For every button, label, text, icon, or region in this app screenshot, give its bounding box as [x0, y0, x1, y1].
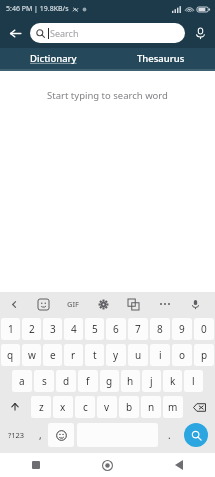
- button[interactable]: Back: [143, 453, 215, 477]
- staticText: n: [148, 400, 155, 414]
- staticText: r: [71, 348, 76, 362]
- button[interactable]: Emoji: [48, 423, 74, 447]
- button[interactable]: i: [150, 344, 170, 366]
- button[interactable]: 7: [128, 318, 148, 340]
- button[interactable]: GIF: [58, 292, 88, 316]
- staticText: y: [113, 348, 119, 362]
- button[interactable]: 5: [85, 318, 104, 340]
- button[interactable]: ?123: [0, 420, 32, 450]
- staticText: Dictionary: [30, 52, 77, 65]
- staticText: 5: [92, 322, 98, 336]
- button[interactable]: g: [100, 370, 119, 392]
- staticText: l: [192, 374, 195, 388]
- button[interactable]: Translate: [118, 292, 149, 316]
- staticText: f: [86, 374, 90, 388]
- button[interactable]: k: [163, 370, 182, 392]
- staticText: 2: [29, 322, 35, 336]
- button[interactable]: Home: [71, 453, 143, 477]
- button[interactable]: Stickers: [28, 292, 58, 316]
- button[interactable]: q: [1, 344, 20, 366]
- button[interactable]: Recents: [0, 453, 71, 477]
- staticText: d: [63, 374, 70, 388]
- staticText: x: [60, 400, 66, 414]
- staticText: u: [135, 348, 142, 362]
- staticText: j: [150, 374, 153, 388]
- staticText: 0: [201, 322, 207, 336]
- button[interactable]: x: [53, 396, 73, 418]
- button[interactable]: Voice search: [185, 18, 215, 48]
- staticText: .: [168, 428, 171, 442]
- staticText: t: [93, 348, 97, 362]
- button[interactable]: z: [31, 396, 51, 418]
- staticText: p: [201, 348, 208, 362]
- button[interactable]: o: [172, 344, 192, 366]
- button[interactable]: Thesaurus: [107, 48, 215, 69]
- staticText: s: [42, 374, 47, 388]
- button[interactable]: c: [75, 396, 95, 418]
- button[interactable]: h: [121, 370, 140, 392]
- button[interactable]: 0: [194, 318, 214, 340]
- button[interactable]: Keyboard settings: [88, 292, 118, 316]
- staticText: GIF: [67, 299, 80, 309]
- staticText: o: [179, 348, 186, 362]
- staticText: z: [39, 400, 44, 414]
- button[interactable]: Shift: [1, 396, 29, 418]
- button[interactable]: j: [142, 370, 161, 392]
- button[interactable]: d: [56, 370, 76, 392]
- staticText: Start typing to search word: [47, 89, 168, 102]
- staticText: i: [159, 348, 162, 362]
- button[interactable]: Search: [30, 23, 185, 43]
- button[interactable]: Period: [161, 420, 177, 450]
- staticText: ?123: [8, 430, 25, 440]
- button[interactable]: 2: [22, 318, 41, 340]
- button[interactable]: Comma: [32, 420, 48, 450]
- button[interactable]: r: [64, 344, 83, 366]
- staticText: 1: [8, 322, 14, 336]
- staticText: c: [83, 400, 88, 414]
- button[interactable]: b: [119, 396, 139, 418]
- staticText: 6: [113, 322, 119, 336]
- button[interactable]: a: [12, 370, 32, 392]
- staticText: h: [127, 374, 134, 388]
- button[interactable]: f: [78, 370, 98, 392]
- button[interactable]: t: [85, 344, 104, 366]
- staticText: Thesaurus: [137, 52, 185, 65]
- button[interactable]: Backspace: [185, 396, 214, 418]
- staticText: g: [106, 374, 113, 388]
- button[interactable]: 6: [106, 318, 126, 340]
- staticText: 7: [135, 322, 141, 336]
- staticText: b: [126, 400, 133, 414]
- button[interactable]: n: [141, 396, 161, 418]
- button[interactable]: 1: [1, 318, 20, 340]
- button[interactable]: v: [97, 396, 117, 418]
- button[interactable]: Dictionary: [0, 48, 107, 69]
- button[interactable]: s: [34, 370, 54, 392]
- staticText: ,: [39, 428, 42, 442]
- staticText: 9: [179, 322, 185, 336]
- button[interactable]: w: [22, 344, 41, 366]
- staticText: a: [19, 374, 25, 388]
- button[interactable]: u: [128, 344, 148, 366]
- button[interactable]: p: [194, 344, 214, 366]
- button[interactable]: m: [163, 396, 183, 418]
- button[interactable]: Collapse toolbar: [0, 292, 28, 316]
- button[interactable]: e: [43, 344, 62, 366]
- staticText: q: [7, 348, 14, 362]
- staticText: m: [168, 400, 178, 414]
- staticText: Search: [50, 27, 79, 39]
- staticText: 3: [50, 322, 56, 336]
- button[interactable]: Search: [177, 420, 215, 450]
- button[interactable]: More options: [149, 292, 180, 316]
- button[interactable]: Voice input: [180, 292, 211, 316]
- button[interactable]: 8: [150, 318, 170, 340]
- button[interactable]: l: [184, 370, 203, 392]
- button[interactable]: 9: [172, 318, 192, 340]
- button[interactable]: Back: [0, 18, 30, 48]
- button[interactable]: 4: [64, 318, 83, 340]
- staticText: 4: [71, 322, 77, 336]
- staticText: w: [28, 348, 36, 362]
- button[interactable]: y: [106, 344, 126, 366]
- button[interactable]: 3: [43, 318, 62, 340]
- staticText: 5:46 PM | 19.8KB/s: [6, 4, 69, 14]
